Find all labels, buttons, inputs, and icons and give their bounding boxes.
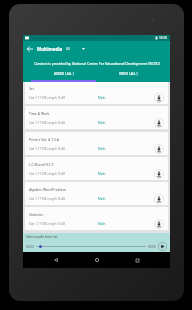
staticText: 00:00: [26, 245, 34, 249]
button[interactable]: Download: [154, 93, 164, 103]
button[interactable]: Statistics: [25, 207, 168, 230]
button[interactable]: Home: [90, 253, 104, 267]
staticText: Size 1.17 KB Length 16:48: [29, 121, 65, 125]
staticText: Statistics: [29, 212, 44, 217]
staticText: 10:16: [159, 36, 168, 40]
staticText: ADDED ( ALL ): [54, 72, 74, 76]
button[interactable]: Back: [23, 41, 37, 56]
staticText: Size 1.17 KB Length 16:48: [29, 96, 65, 100]
staticText: Math: [98, 96, 106, 100]
staticText: Select audio from list: [26, 235, 58, 239]
staticText: Multimedia: [37, 46, 63, 52]
staticText: Prism's Vol. & T.S.A: [29, 137, 59, 142]
staticText: VIDEO ( ALL ): [119, 72, 138, 76]
staticText: Time & Work: [29, 111, 50, 116]
staticText: Size 1.17 KB Length 16:48: [29, 222, 65, 226]
button[interactable]: Time & Work: [25, 106, 168, 129]
staticText: Math: [98, 121, 106, 125]
staticText: Math: [98, 147, 106, 151]
staticText: Size 1.17 KB Length 16:48: [29, 197, 65, 201]
button[interactable]: Download: [154, 194, 164, 204]
button[interactable]: Download: [154, 169, 164, 179]
staticText: 00:00: [148, 245, 156, 249]
button[interactable]: Download: [154, 219, 164, 229]
button[interactable]: L.C.M and H.C.F: [25, 157, 168, 180]
button[interactable]: Back: [49, 253, 63, 267]
button[interactable]: Download: [154, 144, 164, 154]
staticText: Size 1.17 KB Length 16:48: [29, 172, 65, 176]
button[interactable]: Download: [154, 118, 164, 128]
button[interactable]: More options: [79, 45, 87, 53]
button[interactable]: Set: [25, 82, 168, 104]
button[interactable]: Algebric Word Problem: [25, 182, 168, 205]
staticText: Size 1.17 KB Length 16:48: [29, 147, 65, 151]
staticText: Math: [98, 222, 106, 226]
staticText: Set: [29, 86, 34, 91]
staticText: Math: [98, 197, 106, 201]
button[interactable]: Recents: [130, 253, 144, 267]
button[interactable]: ADDED ( ALL ): [31, 70, 96, 78]
button[interactable]: VIDEO ( ALL ): [96, 70, 161, 78]
staticText: Content is provided by National Center F…: [34, 61, 160, 66]
staticText: L.C.M and H.C.F: [29, 162, 54, 167]
button[interactable]: Prism's Vol. & T.S.A: [25, 132, 168, 155]
staticText: Algebric Word Problem: [29, 187, 66, 192]
staticText: All: [66, 46, 70, 51]
button[interactable]: Play: [158, 242, 167, 251]
staticText: Math: [98, 172, 106, 176]
